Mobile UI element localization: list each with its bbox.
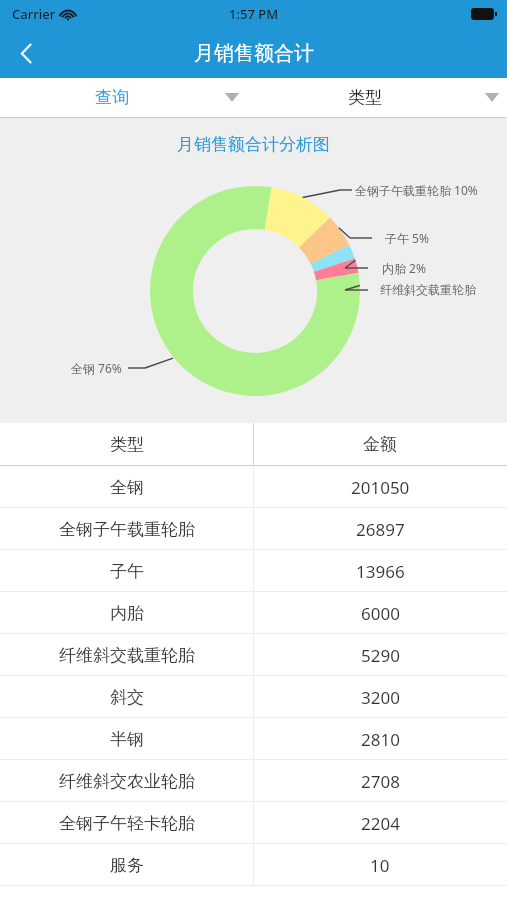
button[interactable]: 纤维斜交农业轮胎 xyxy=(0,760,507,802)
staticText: 纤维斜交农业轮胎 xyxy=(59,771,195,792)
button[interactable]: 纤维斜交载重轮胎 xyxy=(0,634,507,676)
staticText: 5290 xyxy=(361,644,400,667)
staticText: 全钢 xyxy=(110,477,144,498)
staticText: 类型 xyxy=(110,434,144,455)
button[interactable]: 子午 xyxy=(0,550,507,592)
button[interactable]: 全钢子午轻卡轮胎 xyxy=(0,802,507,844)
button[interactable]: 查询 xyxy=(0,78,253,117)
staticText: 全钢子午载重轮胎 xyxy=(59,519,195,540)
staticText: 13966 xyxy=(356,560,405,583)
staticText: 2204 xyxy=(361,812,400,835)
staticText: 月销售额合计 xyxy=(194,41,314,66)
staticText: 全钢子午载重轮胎 10% xyxy=(355,182,478,198)
staticText: 查询 xyxy=(95,87,129,108)
staticText: 斜交 xyxy=(110,687,144,708)
button[interactable]: 斜交 xyxy=(0,676,507,718)
staticText: 子午 5% xyxy=(385,230,429,246)
button[interactable]: 半钢 xyxy=(0,718,507,760)
staticText: 全钢子午轻卡轮胎 xyxy=(59,813,195,834)
staticText: 金额 xyxy=(363,434,397,455)
staticText: 1:57 PM xyxy=(229,5,279,23)
staticText: 2708 xyxy=(361,770,400,793)
staticText: 类型 xyxy=(348,87,382,108)
staticText: 服务 xyxy=(110,855,144,876)
staticText: 纤维斜交载重轮胎 xyxy=(59,645,195,666)
staticText: 3200 xyxy=(361,686,400,709)
button[interactable]: 全钢子午载重轮胎 xyxy=(0,508,507,550)
button[interactable]: Back xyxy=(0,28,52,78)
staticText: 纤维斜交载重轮胎 xyxy=(380,282,476,297)
staticText: 26897 xyxy=(356,518,405,541)
staticText: 全钢 76% xyxy=(71,360,122,376)
staticText: 201050 xyxy=(351,476,410,499)
staticText: 2810 xyxy=(361,728,400,751)
button[interactable]: 类型 xyxy=(253,78,507,117)
staticText: 月销售额合计分析图 xyxy=(177,134,330,155)
staticText: 子午 xyxy=(110,561,144,582)
button[interactable]: 服务 xyxy=(0,844,507,886)
button[interactable]: 全钢 xyxy=(0,466,507,508)
staticText: 半钢 xyxy=(110,729,144,750)
staticText: 6000 xyxy=(361,602,400,625)
staticText: Carrier xyxy=(12,5,56,23)
staticText: 10 xyxy=(370,854,390,877)
staticText: 内胎 2% xyxy=(382,260,426,276)
staticText: 内胎 xyxy=(110,603,144,624)
button[interactable]: 内胎 xyxy=(0,592,507,634)
